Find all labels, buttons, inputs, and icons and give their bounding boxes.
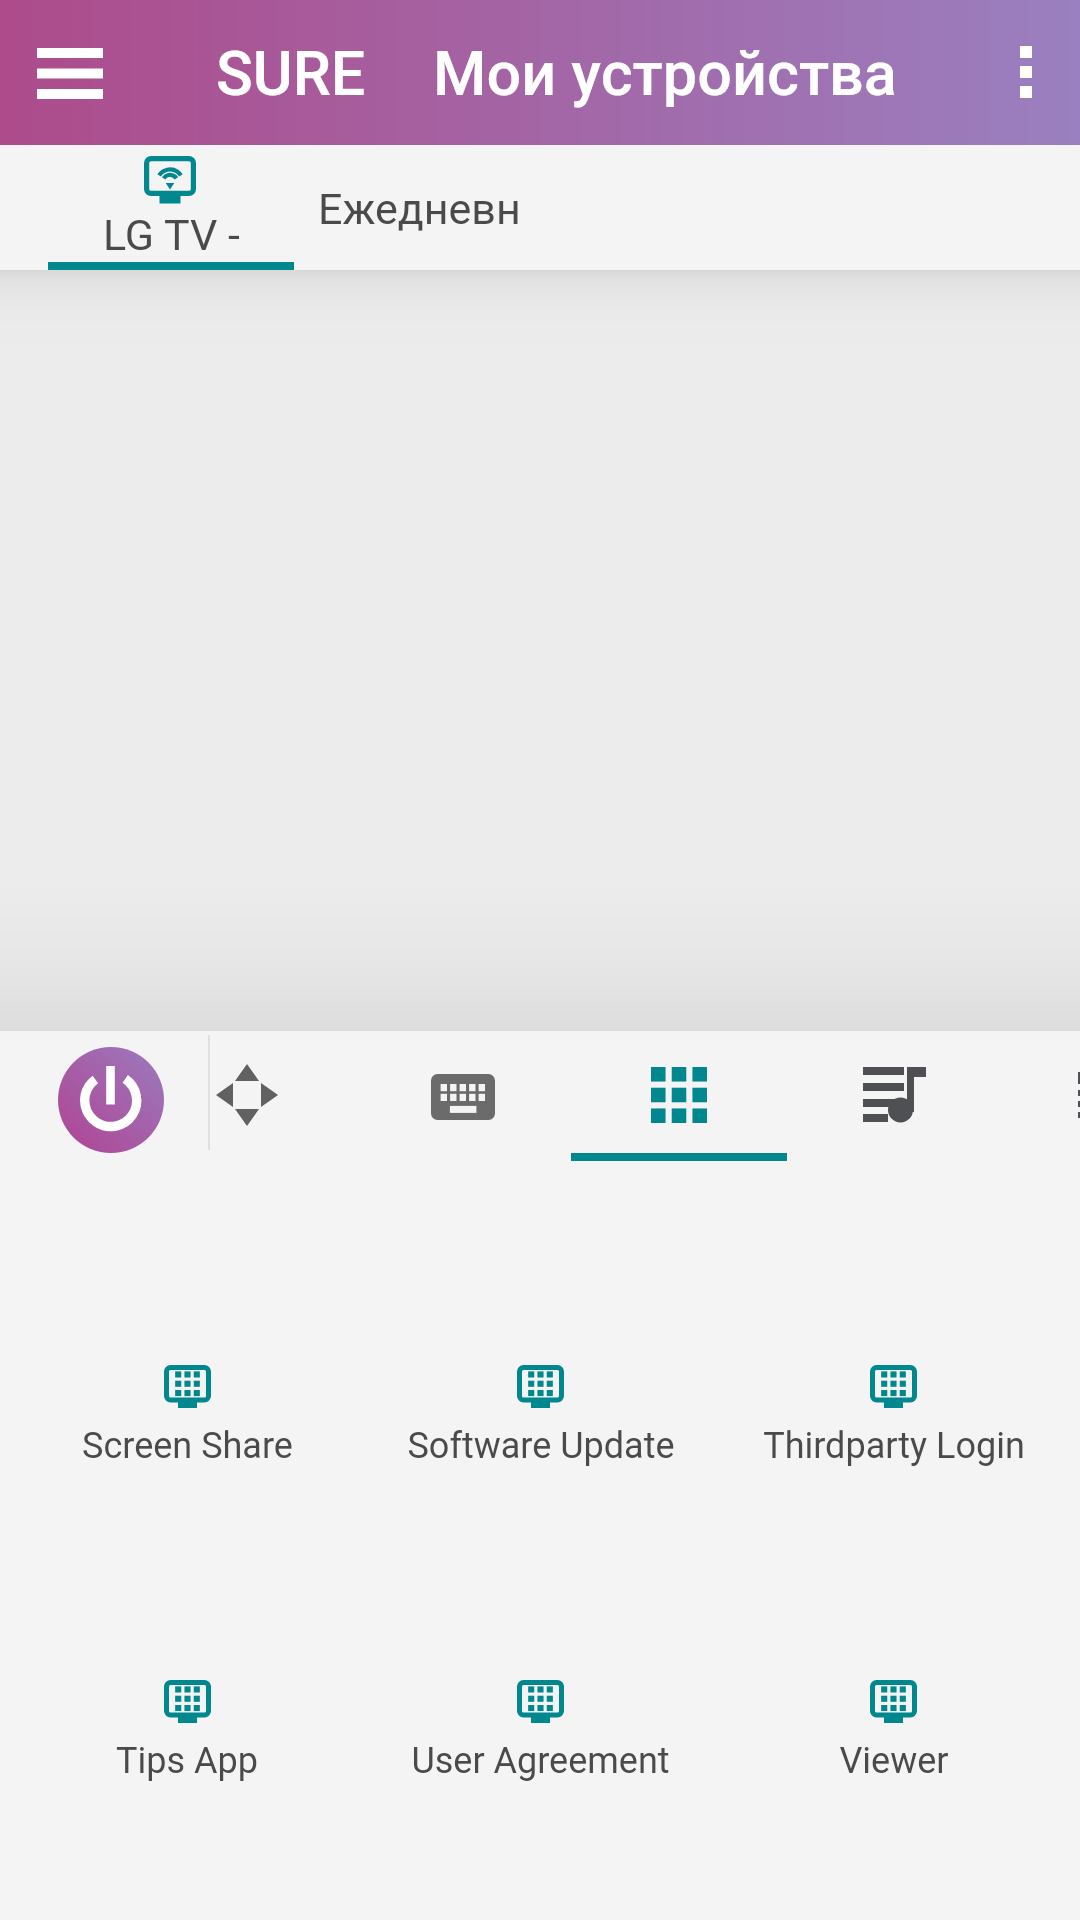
staticText: Thirdparty Login [763, 1425, 1025, 1467]
staticText: SURE [216, 38, 366, 109]
staticText: Tips App [116, 1740, 258, 1782]
staticText: Screen Share [82, 1425, 293, 1467]
staticText: Viewer [839, 1740, 949, 1782]
staticText: LG TV - [103, 210, 240, 260]
button[interactable]: More options [970, 14, 1080, 132]
button[interactable]: Viewer [717, 1680, 1070, 1782]
button[interactable]: Apps [626, 1043, 731, 1148]
button[interactable]: Screen Share [10, 1365, 364, 1467]
button[interactable]: Ежедневн [294, 145, 654, 270]
staticText: Ежедневн [318, 184, 521, 234]
button[interactable]: Menu [4, 14, 136, 132]
button[interactable]: User Agreement [364, 1680, 717, 1782]
staticText: Software Update [407, 1425, 675, 1467]
button[interactable]: Power [58, 1047, 164, 1153]
button[interactable]: Tips App [10, 1680, 364, 1782]
button[interactable]: Media [842, 1043, 947, 1148]
button[interactable]: Thirdparty Login [717, 1365, 1070, 1467]
button[interactable]: Keyboard [410, 1043, 515, 1148]
button[interactable]: Navigation pad [194, 1043, 299, 1148]
button[interactable]: Settings [1049, 1043, 1080, 1148]
staticText: Мои устройства [433, 38, 897, 109]
button[interactable]: Software Update [364, 1365, 717, 1467]
button[interactable]: LG TV - [48, 145, 294, 270]
staticText: User Agreement [411, 1740, 670, 1782]
